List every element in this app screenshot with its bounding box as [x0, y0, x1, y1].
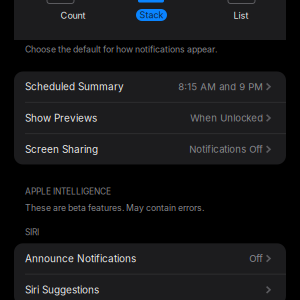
button[interactable]: Announce Notifications — [14, 243, 286, 274]
staticText: SIRI — [25, 227, 39, 237]
staticText: Count — [60, 10, 85, 21]
staticText: Siri Suggestions — [25, 284, 99, 296]
staticText: 8:15 AM and 9 PM — [178, 81, 263, 92]
staticText: Screen Sharing — [25, 143, 98, 155]
staticText: Announce Notifications — [25, 252, 136, 265]
staticText: Show Previews — [25, 112, 97, 124]
staticText: List — [233, 10, 248, 21]
staticText: When Unlocked — [190, 112, 263, 124]
staticText: Scheduled Summary — [25, 81, 124, 93]
staticText: Choose the default for how notifications… — [25, 44, 217, 54]
staticText: Off — [249, 253, 263, 264]
staticText: These are beta features. May contain err… — [25, 203, 204, 213]
button[interactable]: Show Previews — [14, 103, 286, 133]
staticText: APPLE INTELLIGENCE — [25, 186, 111, 197]
staticText: Notifications Off — [189, 143, 263, 155]
staticText: Stack — [139, 9, 163, 20]
button[interactable]: Stack — [136, 9, 167, 21]
button[interactable]: Scheduled Summary — [14, 71, 286, 102]
button[interactable]: Count — [51, 7, 95, 23]
button[interactable]: Siri Suggestions — [14, 275, 286, 300]
button[interactable]: List — [219, 7, 263, 23]
button[interactable]: Screen Sharing — [14, 134, 286, 164]
